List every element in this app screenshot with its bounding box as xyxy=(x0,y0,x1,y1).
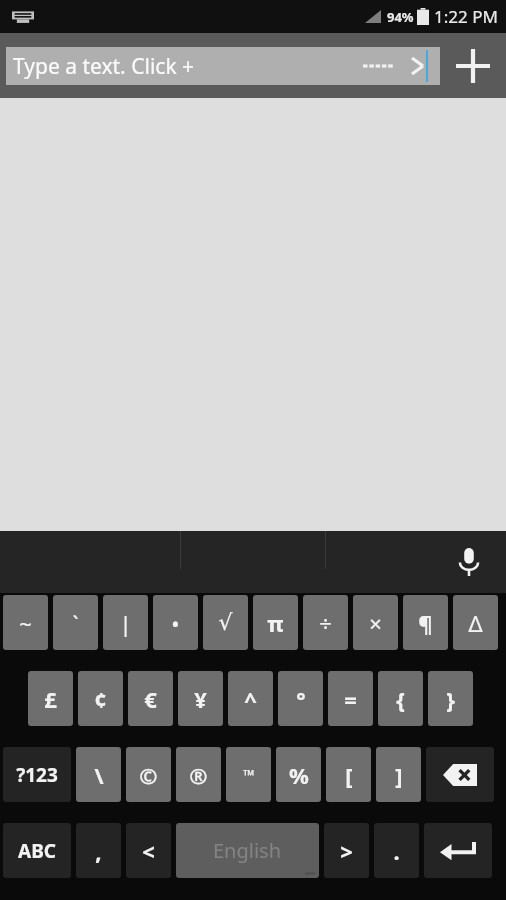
button[interactable]: ^ xyxy=(228,671,273,726)
staticText: £ xyxy=(44,684,57,714)
button[interactable]: ABC xyxy=(3,823,71,878)
staticText: ] xyxy=(395,760,403,790)
button[interactable]: . xyxy=(374,823,419,878)
button[interactable]: } xyxy=(428,671,473,726)
staticText: English xyxy=(213,837,282,864)
button[interactable]: ?123 xyxy=(3,747,71,802)
staticText: \ xyxy=(94,760,104,790)
staticText: 94% xyxy=(387,8,414,26)
staticText: | xyxy=(119,608,132,638)
button[interactable]: • xyxy=(153,595,198,650)
button[interactable]: { xyxy=(378,671,423,726)
button[interactable]: ] xyxy=(376,747,421,802)
button[interactable]: ¶ xyxy=(403,595,448,650)
button[interactable]: Backspace xyxy=(426,747,494,802)
staticText: % xyxy=(289,760,309,790)
button[interactable]: Add xyxy=(440,33,506,98)
button[interactable]: < xyxy=(126,823,171,878)
button[interactable]: English xyxy=(176,823,319,878)
button[interactable]: > xyxy=(324,823,369,878)
staticText: { xyxy=(396,684,405,714)
button[interactable]: ¢ xyxy=(78,671,123,726)
staticText: € xyxy=(144,684,157,714)
staticText: × xyxy=(369,608,382,638)
button[interactable]: \ xyxy=(76,747,121,802)
staticText: ¢ xyxy=(94,684,107,714)
button[interactable]: Type a text. Click + xyxy=(6,47,440,85)
staticText: ~ xyxy=(19,608,32,638)
button[interactable]: × xyxy=(353,595,398,650)
button[interactable]: ¥ xyxy=(178,671,223,726)
staticText: ` xyxy=(72,608,79,638)
button[interactable]: £ xyxy=(28,671,73,726)
staticText: ¥ xyxy=(194,684,207,714)
staticText: } xyxy=(446,684,455,714)
button[interactable]: ° xyxy=(278,671,323,726)
staticText: ÷ xyxy=(319,608,332,638)
staticText: ™ xyxy=(243,765,255,785)
button[interactable]: ~ xyxy=(3,595,48,650)
staticText: ?123 xyxy=(16,762,58,788)
button[interactable]: Enter xyxy=(424,823,492,878)
staticText: ° xyxy=(296,684,306,714)
button[interactable]: © xyxy=(126,747,171,802)
staticText: © xyxy=(139,760,158,790)
button[interactable]: Δ xyxy=(453,595,498,650)
staticText: , xyxy=(95,836,102,866)
staticText: π xyxy=(267,608,284,638)
staticText: ¶ xyxy=(418,608,433,638)
button[interactable]: ÷ xyxy=(303,595,348,650)
staticText: ® xyxy=(189,760,208,790)
button[interactable]: ™ xyxy=(226,747,271,802)
staticText: . xyxy=(393,836,400,866)
button[interactable]: √ xyxy=(203,595,248,650)
button[interactable]: € xyxy=(128,671,173,726)
button[interactable]: | xyxy=(103,595,148,650)
staticText: Type a text. Click + xyxy=(13,52,195,81)
button[interactable]: Voice input xyxy=(448,541,490,583)
staticText: • xyxy=(171,608,180,638)
button[interactable]: ` xyxy=(53,595,98,650)
staticText: ^ xyxy=(244,684,257,714)
staticText: > xyxy=(340,836,353,866)
button[interactable]: , xyxy=(76,823,121,878)
button[interactable]: π xyxy=(253,595,298,650)
button[interactable]: % xyxy=(276,747,321,802)
staticText: Δ xyxy=(468,608,483,638)
button[interactable]: [ xyxy=(326,747,371,802)
button[interactable]: ® xyxy=(176,747,221,802)
button[interactable]: = xyxy=(328,671,373,726)
staticText: < xyxy=(142,836,155,866)
staticText: √ xyxy=(218,610,233,636)
staticText: ABC xyxy=(18,838,56,864)
staticText: [ xyxy=(345,760,353,790)
staticText: = xyxy=(344,684,357,714)
staticText: 1:22 PM xyxy=(434,5,498,28)
